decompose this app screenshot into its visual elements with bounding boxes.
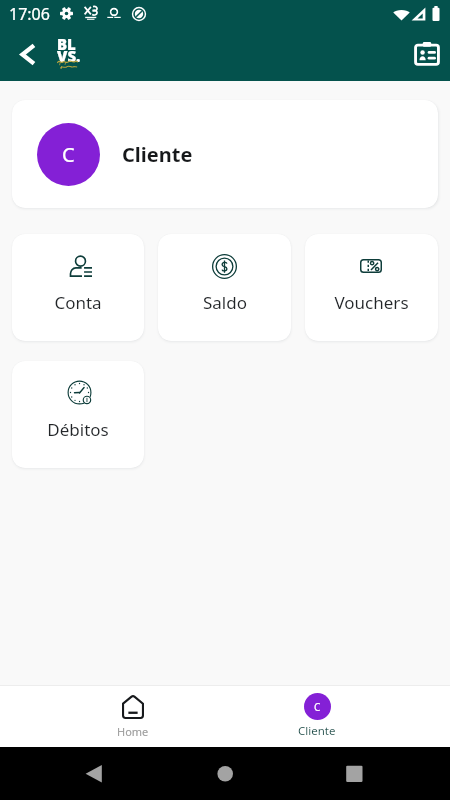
button[interactable]: Vouchers [305, 234, 438, 341]
staticText: Cliente [298, 723, 336, 739]
button[interactable]: Voltar [7, 34, 47, 74]
staticText: VS. [57, 46, 81, 66]
staticText: Vouchers [334, 291, 409, 314]
button[interactable]: Saldo [158, 234, 291, 341]
staticText: BL [57, 34, 76, 54]
button[interactable]: Home [41, 685, 225, 747]
button[interactable]: Conta [12, 234, 144, 341]
staticText: C [62, 141, 75, 168]
staticText: Conta [54, 291, 102, 314]
staticText: Home [117, 724, 149, 739]
staticText: Saldo [203, 291, 247, 314]
button[interactable]: Cartão de cliente [405, 32, 449, 76]
button[interactable]: C [12, 100, 438, 208]
button[interactable]: Débitos [12, 361, 144, 468]
staticText: Cliente [122, 141, 193, 168]
button[interactable]: C [225, 685, 409, 747]
staticText: C [314, 700, 321, 714]
staticText: Débitos [47, 418, 109, 441]
staticText: 17:06 [9, 3, 50, 25]
